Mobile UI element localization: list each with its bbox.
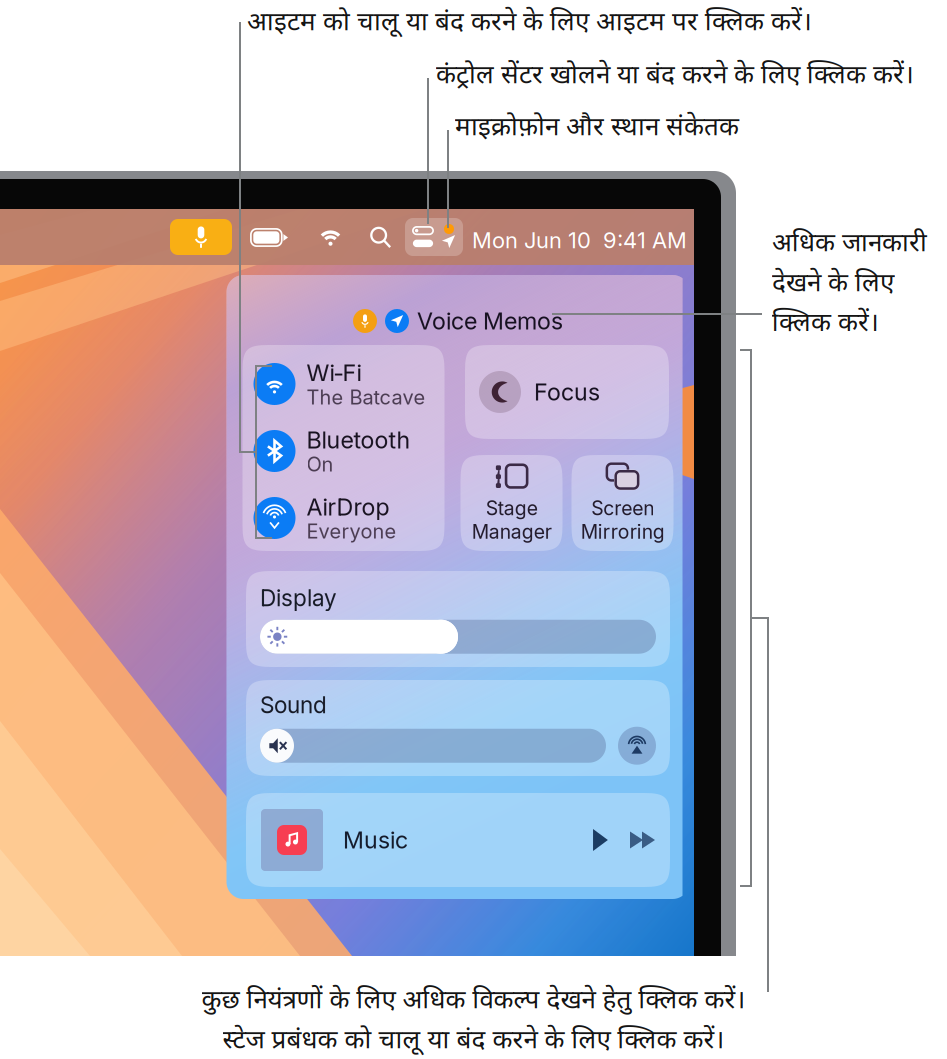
button[interactable]: Display [246,571,670,667]
staticText: माइक्रोफ़ोन और स्थान संकेतक [455,112,739,146]
staticText: Sound [260,691,327,719]
button[interactable]: Screen Mirroring [571,455,673,551]
staticText: देखने के लिए [772,268,894,302]
staticText: अधिक जानकारी [772,228,927,262]
staticText: Stage Manager [471,497,551,543]
button[interactable]: Spotlight Search [369,226,392,249]
button[interactable]: Stage Manager [460,455,562,551]
button[interactable]: Sound [246,680,670,776]
staticText: Music [343,826,408,854]
staticText: Voice Memos [417,307,563,335]
button[interactable]: Bluetooth [253,427,431,475]
staticText: कुछ नियंत्रणों के लिए अधिक विकल्प देखने … [201,985,745,1019]
staticText: Screen Mirroring [580,497,664,543]
staticText: क्लिक करें। [772,308,879,342]
staticText: Focus [534,378,600,406]
staticText: आइटम को चालू या बंद करने के लिए आइटम पर … [247,7,812,41]
button[interactable]: Battery [250,228,288,247]
button[interactable]: Control Center [405,218,463,256]
staticText: Mon Jun 10 9:41 AM [472,227,687,254]
staticText: Wi‑Fi [306,359,361,387]
staticText: The Batcave [306,385,425,409]
staticText: Display [260,584,337,612]
button[interactable]: Wi‑Fi [253,360,431,408]
button[interactable]: Music [246,793,670,887]
staticText: AirDrop [306,493,389,521]
staticText: Everyone [306,519,396,543]
button[interactable]: AirDrop [253,494,431,542]
button[interactable]: Microphone in use [170,219,232,255]
button[interactable]: Focus [465,345,669,439]
staticText: On [306,452,333,476]
button[interactable]: Wi-Fi [317,227,344,247]
staticText: Bluetooth [306,426,410,454]
staticText: स्टेज प्रबंधक को चालू या बंद करने के लिए… [222,1025,724,1059]
staticText: कंट्रोल सेंटर खोलने या बंद करने के लिए क… [436,60,914,94]
